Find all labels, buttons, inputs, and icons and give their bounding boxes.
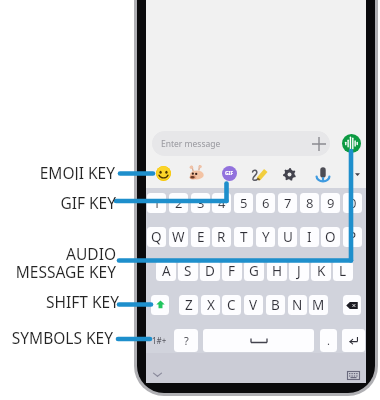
staticText: 2 bbox=[175, 194, 183, 212]
button[interactable]: Symbols key bbox=[148, 329, 170, 352]
button[interactable]: R bbox=[212, 227, 231, 247]
staticText: GIF KEY bbox=[60, 192, 116, 210]
staticText: 3 bbox=[197, 194, 205, 212]
button[interactable]: Audio message key bbox=[342, 134, 361, 153]
staticText: MESSAGE KEY bbox=[15, 261, 116, 279]
staticText: M bbox=[312, 296, 325, 314]
button[interactable]: Sticker key bbox=[186, 162, 208, 184]
button[interactable]: GIF key bbox=[218, 162, 240, 184]
button[interactable]: Z bbox=[179, 295, 198, 315]
button[interactable]: Space key bbox=[203, 329, 314, 352]
button[interactable]: Handwriting key bbox=[248, 162, 270, 184]
button[interactable]: 2 bbox=[169, 193, 188, 213]
staticText: ? bbox=[184, 333, 189, 348]
staticText: V bbox=[249, 296, 258, 314]
button[interactable]: F bbox=[222, 261, 242, 281]
button[interactable]: O bbox=[321, 227, 340, 247]
staticText: F bbox=[228, 262, 236, 280]
button[interactable]: M bbox=[309, 295, 328, 315]
staticText: U bbox=[283, 228, 293, 246]
button[interactable]: 7 bbox=[278, 193, 297, 213]
staticText: L bbox=[339, 262, 347, 280]
staticText: A bbox=[162, 262, 171, 280]
button[interactable]: I bbox=[300, 227, 319, 247]
staticText: 8 bbox=[306, 194, 314, 212]
staticText: 5 bbox=[240, 194, 248, 212]
staticText: SHIFT KEY bbox=[46, 291, 119, 309]
button[interactable]: 0 bbox=[343, 193, 362, 213]
button[interactable]: W bbox=[169, 227, 188, 247]
button[interactable]: ? bbox=[174, 329, 198, 352]
button[interactable]: More bbox=[346, 163, 368, 185]
button[interactable]: G bbox=[244, 261, 264, 281]
staticText: S bbox=[184, 262, 192, 280]
staticText: GIF bbox=[225, 170, 234, 177]
button[interactable]: Settings key bbox=[278, 163, 300, 185]
button[interactable]: B bbox=[266, 295, 285, 315]
button[interactable]: X bbox=[201, 295, 220, 315]
staticText: J bbox=[297, 262, 301, 280]
staticText: H bbox=[272, 262, 283, 280]
button[interactable]: 6 bbox=[256, 193, 275, 213]
staticText: Enter message bbox=[161, 138, 221, 150]
button[interactable]: E bbox=[191, 227, 210, 247]
button[interactable]: A bbox=[156, 261, 176, 281]
staticText: X bbox=[207, 296, 215, 314]
staticText: E bbox=[197, 228, 205, 246]
button[interactable]: Hide keyboard bbox=[150, 367, 164, 381]
button[interactable]: N bbox=[288, 295, 307, 315]
staticText: SYMBOLS KEY bbox=[11, 327, 113, 345]
button[interactable]: 4 bbox=[212, 193, 231, 213]
staticText: C bbox=[227, 296, 236, 314]
button[interactable]: D bbox=[200, 261, 220, 281]
button[interactable]: . bbox=[320, 329, 337, 352]
staticText: AUDIO bbox=[66, 243, 116, 261]
staticText: EMOJI KEY bbox=[39, 162, 115, 180]
button[interactable]: Backspace key bbox=[343, 295, 361, 315]
button[interactable]: 9 bbox=[321, 193, 340, 213]
staticText: 7 bbox=[284, 194, 292, 212]
staticText: 4 bbox=[218, 194, 226, 212]
staticText: D bbox=[205, 262, 215, 280]
staticText: 6 bbox=[262, 194, 270, 212]
staticText: 0 bbox=[349, 194, 357, 212]
button[interactable]: Y bbox=[256, 227, 275, 247]
staticText: B bbox=[271, 296, 280, 314]
button[interactable]: U bbox=[278, 227, 297, 247]
staticText: N bbox=[292, 296, 303, 314]
staticText: Q bbox=[151, 228, 162, 246]
staticText: Y bbox=[262, 228, 270, 246]
button[interactable]: 8 bbox=[300, 193, 319, 213]
button[interactable]: Q bbox=[147, 227, 166, 247]
staticText: R bbox=[217, 228, 226, 246]
staticText: 1#+ bbox=[152, 335, 167, 346]
staticText: W bbox=[172, 228, 185, 246]
button[interactable]: C bbox=[222, 295, 241, 315]
button[interactable]: 1 bbox=[147, 193, 166, 213]
staticText: P bbox=[348, 228, 357, 246]
button[interactable]: Keyboard bbox=[346, 369, 361, 382]
button[interactable]: Shift key bbox=[151, 295, 169, 315]
staticText: 9 bbox=[327, 194, 335, 212]
button[interactable]: P bbox=[343, 227, 362, 247]
button[interactable]: K bbox=[311, 261, 331, 281]
button[interactable]: J bbox=[289, 261, 309, 281]
button[interactable]: Enter message bbox=[152, 131, 330, 156]
staticText: T bbox=[240, 228, 248, 246]
button[interactable]: 5 bbox=[234, 193, 253, 213]
button[interactable]: H bbox=[267, 261, 287, 281]
button[interactable]: Voice input key bbox=[312, 163, 334, 185]
staticText: O bbox=[325, 228, 336, 246]
staticText: . bbox=[327, 333, 330, 348]
staticText: K bbox=[317, 262, 326, 280]
button[interactable]: Emoji key bbox=[152, 162, 174, 184]
button[interactable]: 3 bbox=[191, 193, 210, 213]
staticText: I bbox=[307, 228, 312, 246]
staticText: G bbox=[249, 262, 259, 280]
button[interactable]: V bbox=[244, 295, 263, 315]
staticText: 1 bbox=[153, 194, 161, 212]
button[interactable]: L bbox=[333, 261, 353, 281]
button[interactable]: S bbox=[178, 261, 198, 281]
button[interactable]: Enter key bbox=[342, 329, 365, 352]
button[interactable]: T bbox=[234, 227, 253, 247]
